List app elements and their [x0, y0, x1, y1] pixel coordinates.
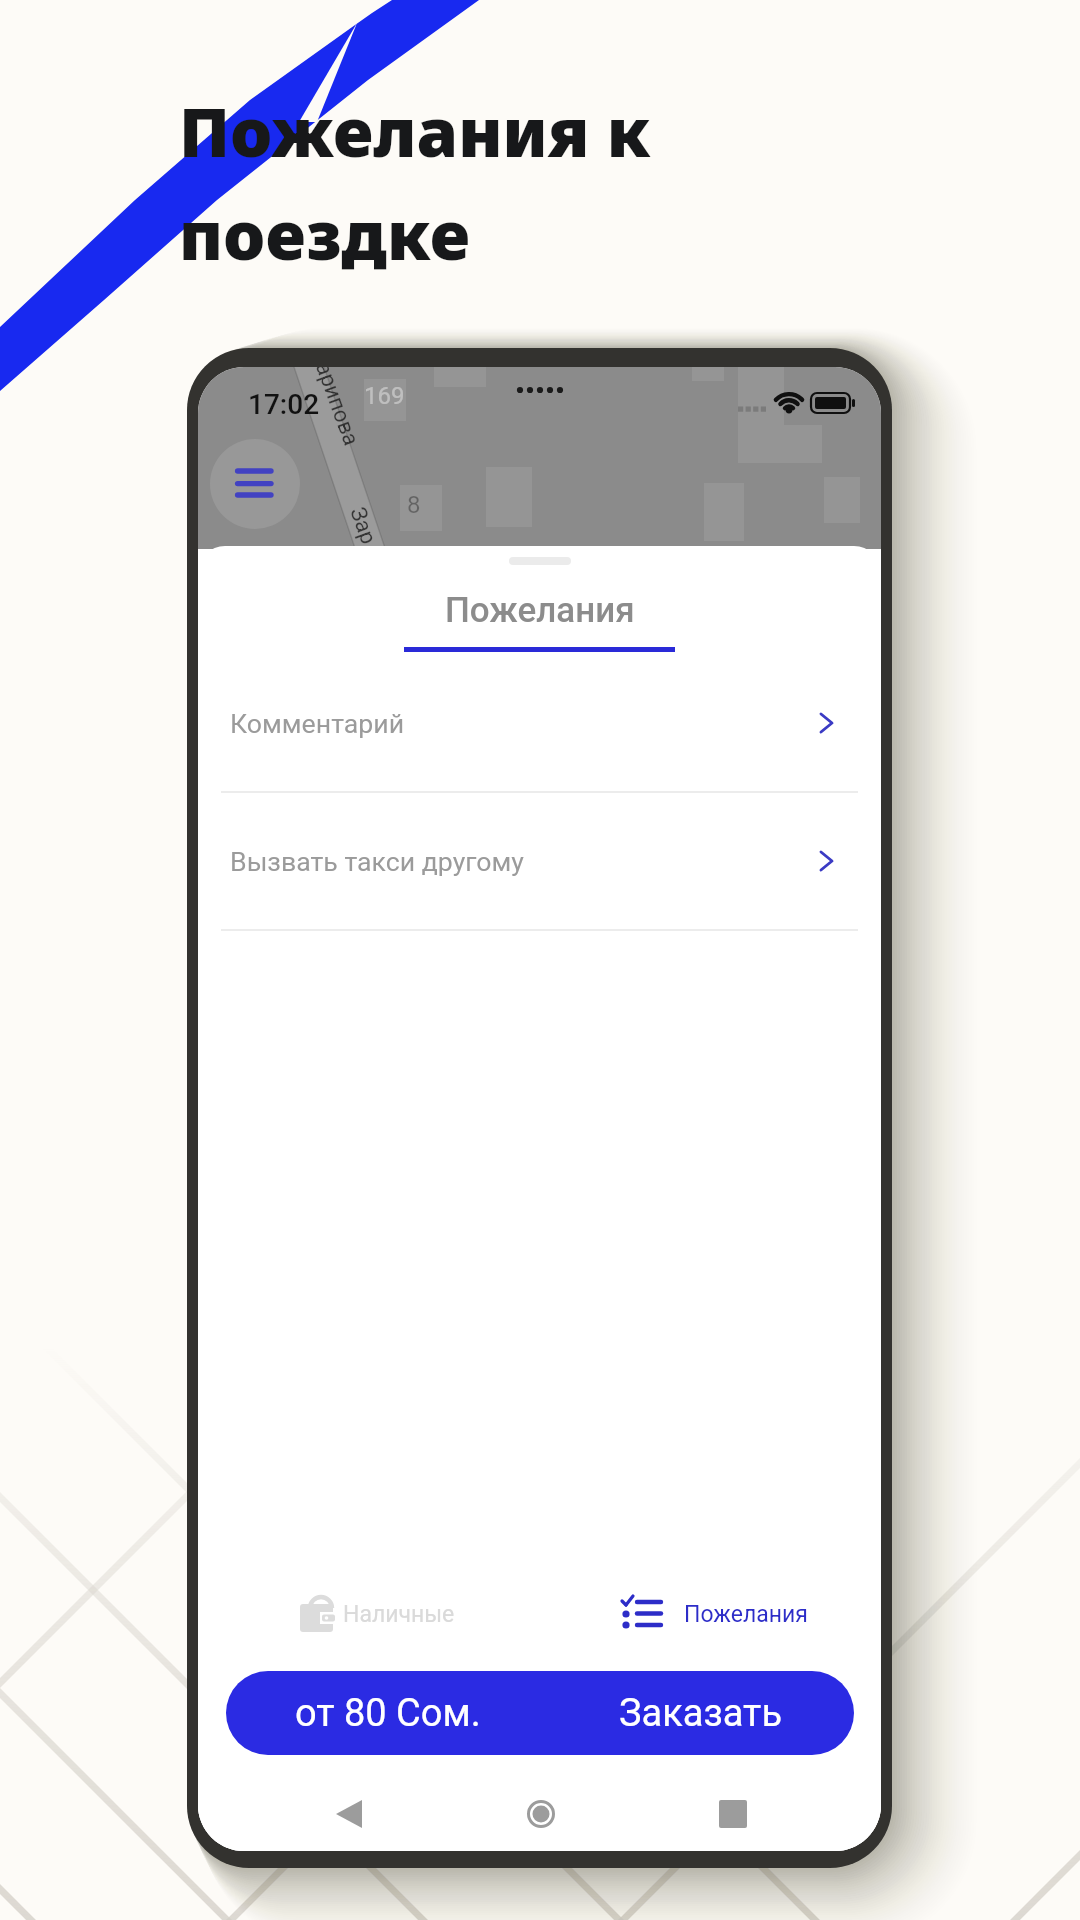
button[interactable]: от 80 Сом.	[226, 1671, 854, 1755]
staticText: 8	[407, 491, 421, 519]
staticText: Комментарий	[230, 708, 405, 739]
staticText: Пожелания к поездке	[179, 85, 651, 279]
staticText: а Шарипова	[297, 367, 364, 449]
staticText: Заказать	[619, 1691, 783, 1736]
staticText: Пожелания	[684, 1601, 808, 1628]
button[interactable]: Пожелания	[619, 1592, 809, 1636]
button[interactable]: Menu	[210, 439, 300, 529]
staticText: от 80 Сом.	[295, 1691, 481, 1736]
staticText: Пожелания	[445, 590, 635, 631]
staticText: 17:02	[248, 388, 320, 421]
staticText: Зар	[344, 504, 382, 548]
button[interactable]: Вызвать такси другому	[198, 793, 881, 929]
button[interactable]: Комментарий	[198, 655, 881, 791]
staticText: Вызвать такси другому	[230, 846, 524, 877]
staticText: Наличные	[343, 1601, 455, 1628]
staticText: 169	[364, 382, 405, 410]
button[interactable]: Наличные	[295, 1592, 455, 1636]
button[interactable]: Пожелания	[404, 590, 675, 652]
